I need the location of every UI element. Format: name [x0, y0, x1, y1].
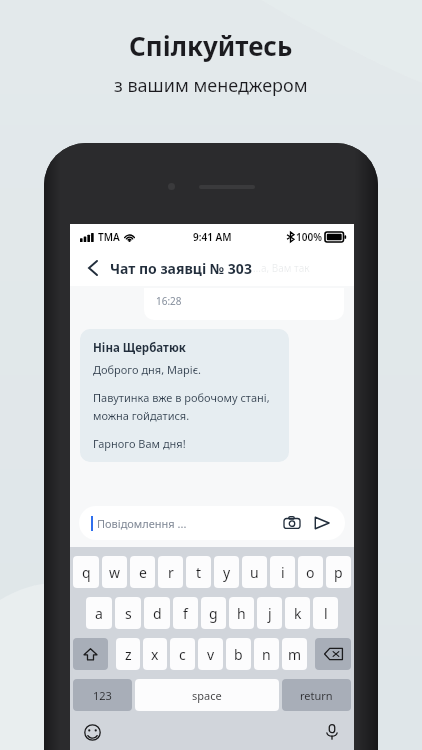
button[interactable]: i — [270, 556, 295, 588]
button[interactable]: a — [86, 597, 112, 629]
staticText: p — [334, 563, 343, 582]
staticText: q — [82, 563, 91, 582]
staticText: b — [234, 645, 243, 664]
button[interactable]: o — [298, 556, 323, 588]
staticText: f — [183, 604, 188, 623]
staticText: TMA — [98, 230, 120, 244]
button[interactable]: c — [170, 638, 195, 670]
staticText: 100% — [296, 230, 322, 244]
button[interactable]: space — [135, 679, 279, 711]
staticText: r — [168, 563, 174, 582]
button[interactable]: Attach photo — [281, 512, 303, 534]
button[interactable]: Send — [311, 512, 333, 534]
button[interactable]: n — [254, 638, 279, 670]
staticText: 16:28 — [156, 294, 182, 308]
button[interactable]: s — [115, 597, 141, 629]
button[interactable]: z — [116, 638, 140, 670]
button[interactable]: f — [173, 597, 198, 629]
button[interactable]: r — [158, 556, 183, 588]
staticText: o — [306, 563, 315, 582]
button[interactable]: m — [282, 638, 307, 670]
staticText: h — [237, 604, 246, 623]
button[interactable]: l — [313, 597, 338, 629]
button[interactable]: t — [186, 556, 211, 588]
staticText: return — [300, 688, 333, 703]
button[interactable]: b — [226, 638, 251, 670]
staticText: y — [223, 563, 231, 582]
button[interactable]: u — [242, 556, 267, 588]
button[interactable]: return — [282, 679, 351, 711]
button[interactable]: Emoji — [82, 722, 102, 742]
staticText: c — [179, 645, 186, 664]
staticText: t — [196, 563, 202, 582]
button[interactable]: h — [229, 597, 254, 629]
staticText: s — [125, 604, 132, 623]
staticText: …а, Вам так — [253, 261, 310, 275]
staticText: j — [268, 604, 272, 623]
staticText: з вашим менеджером — [114, 73, 308, 98]
staticText: Чат по заявці № 303 — [110, 259, 252, 278]
button[interactable]: y — [214, 556, 239, 588]
staticText: Повідомлення ... — [97, 516, 187, 531]
button[interactable]: w — [102, 556, 127, 588]
staticText: i — [281, 563, 285, 582]
staticText: z — [125, 645, 132, 664]
button[interactable]: j — [257, 597, 282, 629]
button[interactable]: Shift — [73, 638, 108, 670]
staticText: m — [288, 645, 302, 664]
staticText: можна гойдатися. — [93, 408, 190, 423]
staticText: v — [207, 645, 215, 664]
button[interactable]: v — [198, 638, 223, 670]
staticText: w — [109, 563, 121, 582]
staticText: Гарного Вам дня! — [93, 436, 186, 451]
staticText: d — [153, 604, 162, 623]
staticText: Спілкуйтесь — [129, 28, 293, 63]
button[interactable]: 123 — [73, 679, 132, 711]
button[interactable]: Backspace — [315, 638, 351, 670]
staticText: 9:41 AM — [193, 230, 232, 244]
staticText: l — [324, 604, 328, 623]
staticText: space — [192, 688, 222, 703]
button[interactable]: x — [143, 638, 167, 670]
button[interactable]: d — [144, 597, 170, 629]
button[interactable]: Back — [80, 255, 106, 281]
staticText: x — [151, 645, 159, 664]
button[interactable]: Voice input — [322, 722, 342, 742]
button[interactable]: Повідомлення ... — [79, 506, 345, 540]
staticText: 123 — [93, 688, 112, 703]
button[interactable]: 16:28 — [144, 288, 344, 320]
staticText: g — [209, 604, 218, 623]
staticText: a — [95, 604, 103, 623]
staticText: u — [250, 563, 259, 582]
staticText: e — [139, 563, 147, 582]
staticText: n — [262, 645, 271, 664]
staticText: Ніна Щербатюк — [93, 340, 186, 356]
button[interactable]: p — [326, 556, 351, 588]
button[interactable]: e — [130, 556, 155, 588]
staticText: k — [294, 604, 302, 623]
button[interactable]: q — [73, 556, 99, 588]
button[interactable]: Ніна Щербатюк — [80, 329, 289, 462]
button[interactable]: k — [285, 597, 310, 629]
button[interactable]: g — [201, 597, 226, 629]
staticText: Доброго дня, Маріє. — [93, 362, 202, 377]
staticText: Павутинка вже в робочому стані, — [93, 390, 270, 405]
